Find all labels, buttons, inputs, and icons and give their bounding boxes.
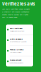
staticText: Avis certifiés bbox=[10, 27, 23, 30]
staticText: Vérifiez les avis bbox=[2, 1, 35, 7]
staticText: Images réelles bbox=[10, 51, 22, 53]
button[interactable]: Note globale bbox=[6, 35, 33, 45]
staticText: Moyenne sur 120 avis bbox=[10, 40, 27, 43]
button[interactable]: Signalement bbox=[6, 56, 33, 66]
button[interactable]: Avis certifiés bbox=[6, 24, 33, 35]
button[interactable]: Photos clients bbox=[6, 46, 33, 56]
staticText: Photos clients bbox=[10, 48, 24, 51]
staticText: Signalement bbox=[10, 59, 22, 61]
staticText: Note globale bbox=[10, 37, 23, 40]
staticText: Contenu suspect bbox=[10, 62, 24, 64]
staticText: Publiés après achat bbox=[10, 30, 25, 32]
staticText: Les avis vérifiés vous aident à choisir … bbox=[2, 8, 30, 18]
